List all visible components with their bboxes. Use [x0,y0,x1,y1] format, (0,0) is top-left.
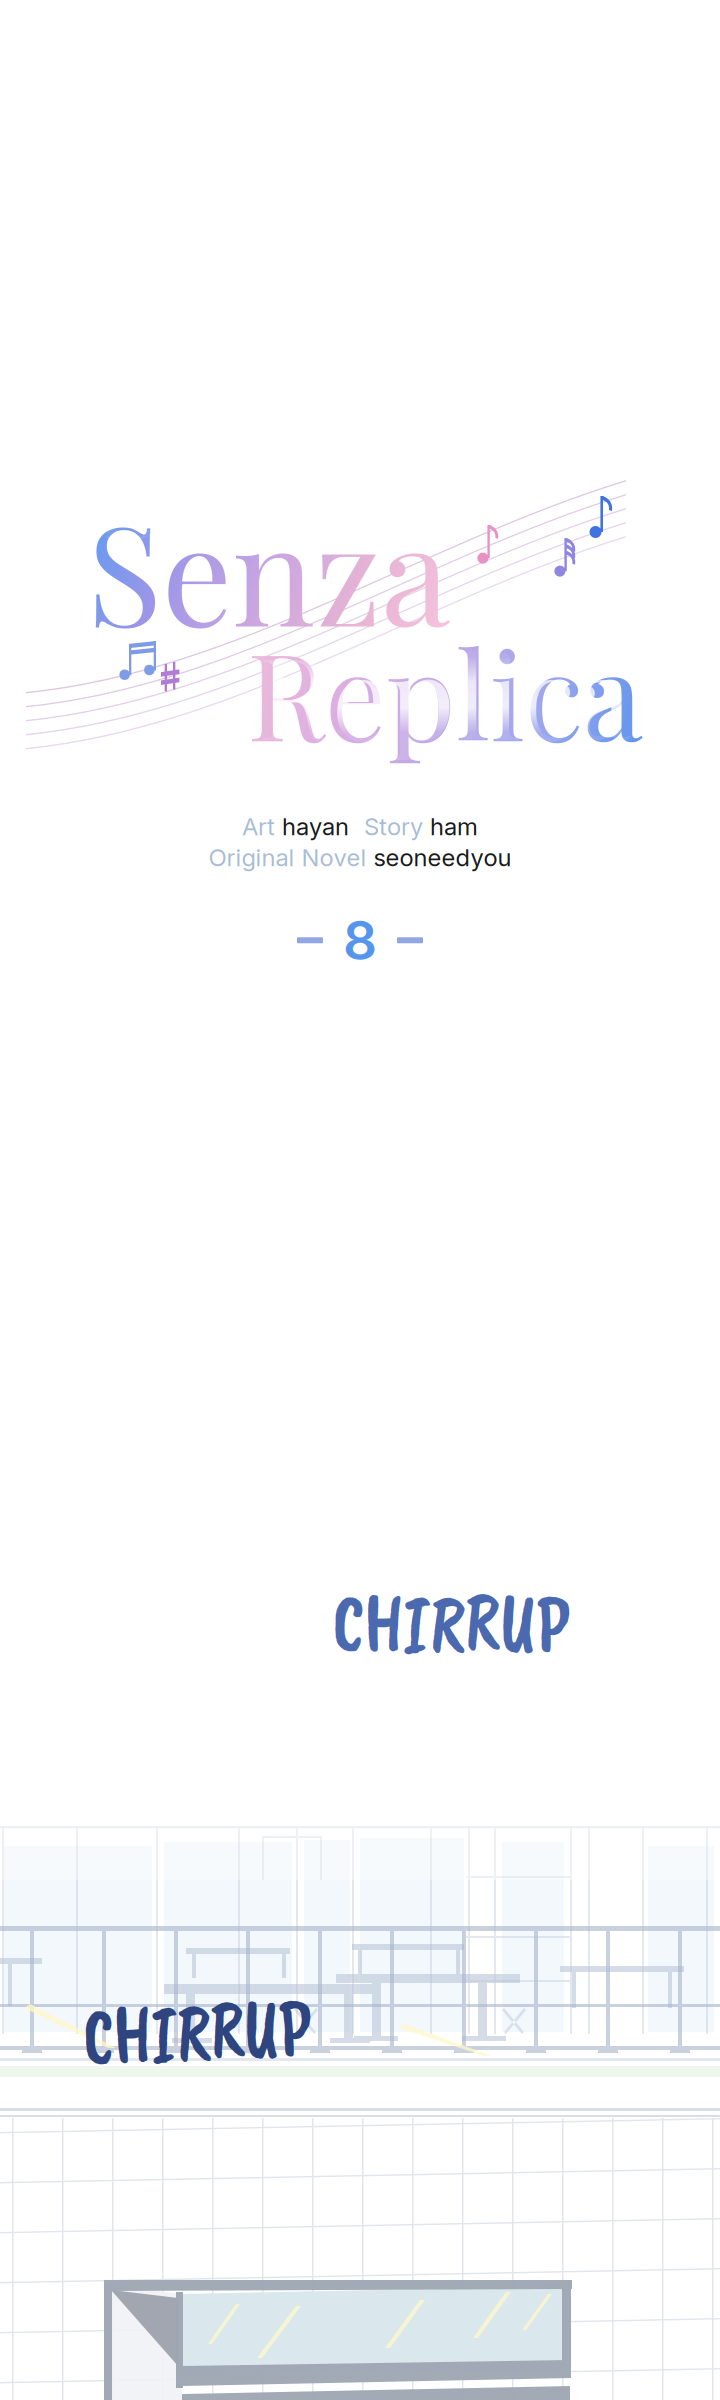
staticText: ham [430,812,478,841]
staticText: hayan [282,812,349,841]
staticText: seoneedyou [373,843,511,872]
staticText: CHIRRUP [311,1570,590,1675]
staticText: Story [364,812,423,841]
staticText: Original Novel [208,843,366,872]
staticText: Art [242,812,275,841]
staticText: CHIRRUP [64,1981,329,2081]
staticText: 8 [343,908,377,972]
